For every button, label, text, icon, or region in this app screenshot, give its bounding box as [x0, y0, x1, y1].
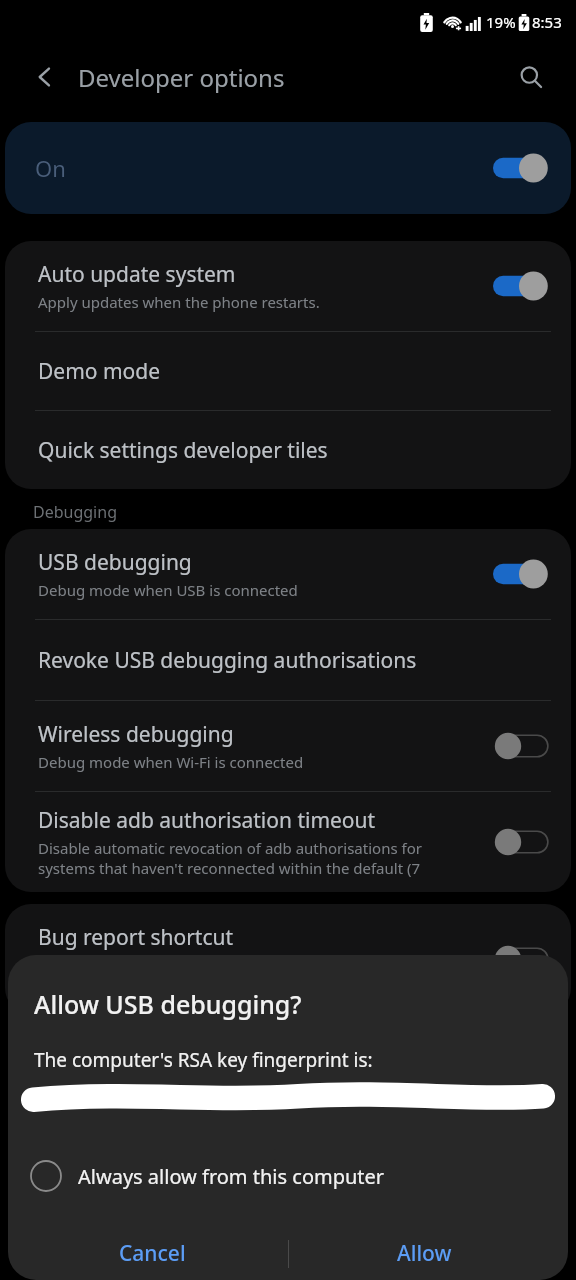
staticText: Allow	[397, 1239, 452, 1268]
staticText: Auto update system	[38, 260, 236, 289]
staticText: Developer options	[78, 61, 285, 94]
button[interactable]: Allow	[280, 1227, 568, 1280]
staticText: Demo mode	[38, 357, 161, 386]
button[interactable]: Toggle	[493, 944, 549, 974]
button[interactable]: Disable adb authorisation timeout	[5, 792, 571, 892]
button[interactable]: USB debugging	[5, 529, 571, 619]
staticText: Debugging	[33, 501, 117, 523]
staticText: 8:53	[532, 12, 562, 32]
button[interactable]: Search	[508, 54, 554, 100]
staticText: Disable adb authorisation timeout	[38, 806, 376, 835]
staticText: Always allow from this computer	[78, 1163, 385, 1190]
button[interactable]: Revoke USB debugging authorisations	[5, 620, 571, 700]
button[interactable]: Quick settings developer tiles	[5, 411, 571, 489]
staticText: On	[35, 153, 66, 183]
staticText: Disable automatic revocation of adb auth…	[38, 838, 422, 878]
button[interactable]: Toggle	[493, 153, 549, 183]
staticText: Cancel	[119, 1239, 186, 1268]
staticText: USB debugging	[38, 548, 192, 577]
button[interactable]: Toggle	[493, 731, 549, 761]
button[interactable]: On	[5, 122, 571, 214]
button[interactable]: Wireless debugging	[5, 701, 571, 791]
staticText: Revoke USB debugging authorisations	[38, 646, 417, 675]
staticText: Bug report shortcut	[38, 923, 234, 952]
button[interactable]: Bug report shortcut	[5, 904, 571, 1014]
staticText: Debug mode when Wi-Fi is connected	[38, 752, 304, 772]
staticText: Debug mode when USB is connected	[38, 580, 298, 600]
button[interactable]: Auto update system	[5, 241, 571, 331]
staticText: Wireless debugging	[38, 720, 234, 749]
staticText: The computer's RSA key fingerprint is:	[34, 1047, 373, 1073]
button[interactable]: Toggle	[493, 559, 549, 589]
button[interactable]: Back	[22, 54, 68, 100]
staticText: Quick settings developer tiles	[38, 436, 328, 465]
button[interactable]: Toggle	[493, 271, 549, 301]
button[interactable]: Demo mode	[5, 332, 571, 410]
button[interactable]: Always allow from this computer	[30, 1153, 568, 1199]
button[interactable]: Toggle	[493, 827, 549, 857]
staticText: Allow USB debugging?	[34, 987, 302, 1021]
button[interactable]: Cancel	[8, 1227, 296, 1280]
staticText: Apply updates when the phone restarts.	[38, 292, 320, 312]
staticText: 19%	[486, 12, 516, 32]
